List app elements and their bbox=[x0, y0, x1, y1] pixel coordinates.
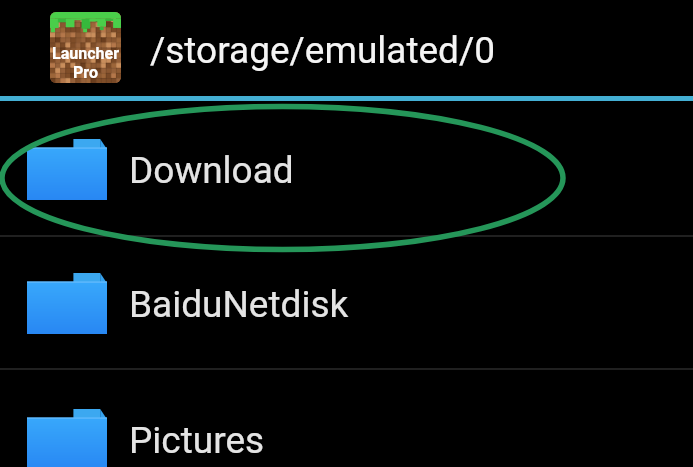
button[interactable]: Launcher Pro bbox=[0, 0, 693, 96]
staticText: BaiduNetdisk bbox=[129, 283, 349, 326]
button[interactable]: Pictures bbox=[0, 370, 693, 467]
staticText: Pro bbox=[73, 63, 98, 82]
button[interactable]: BaiduNetdisk bbox=[0, 237, 693, 368]
staticText: Launcher bbox=[52, 44, 119, 63]
staticText: /storage/emulated/0 bbox=[150, 29, 496, 72]
staticText: Download bbox=[129, 149, 294, 192]
staticText: Pictures bbox=[129, 419, 265, 462]
button[interactable]: Download bbox=[0, 101, 693, 235]
button[interactable]: Launcher Pro bbox=[50, 12, 121, 83]
